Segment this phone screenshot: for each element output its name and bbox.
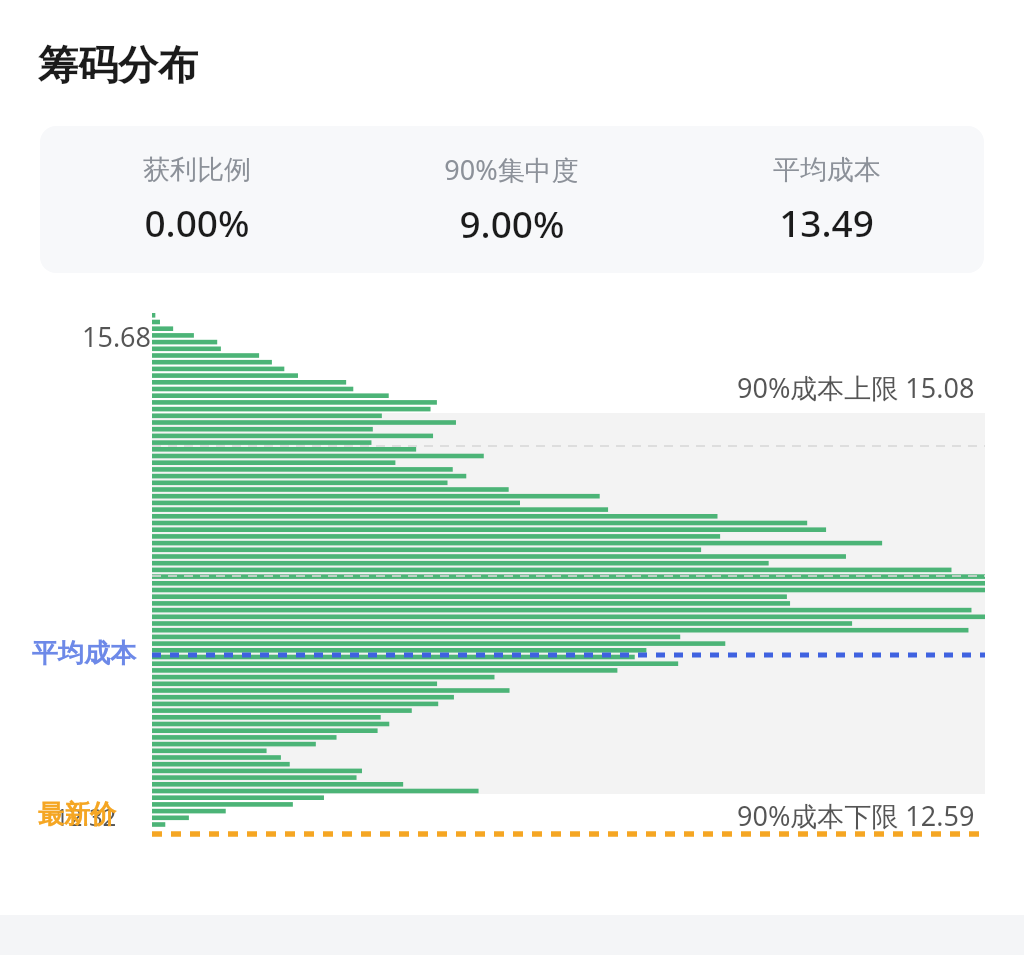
staticText: 筹码分布 xyxy=(38,40,198,90)
button[interactable]: 获利比例 xyxy=(40,153,354,247)
staticText: 90%集中度 xyxy=(444,151,579,188)
staticText: 15.68 xyxy=(82,318,152,355)
staticText: 平均成本 xyxy=(32,637,136,670)
staticText: 0.00% xyxy=(144,197,250,247)
staticText: 12.32 xyxy=(55,800,117,833)
staticText: 90%成本下限 12.59 xyxy=(737,797,975,834)
staticText: 13.49 xyxy=(779,197,874,247)
button[interactable]: 筹码分布图 xyxy=(0,293,1024,915)
staticText: 平均成本 xyxy=(773,153,881,187)
staticText: 获利比例 xyxy=(143,153,251,187)
staticText: 9.00% xyxy=(459,198,565,248)
button[interactable]: 90%集中度 xyxy=(354,151,669,248)
staticText: 90%成本上限 15.08 xyxy=(737,369,975,406)
button[interactable]: 平均成本 xyxy=(669,153,984,247)
staticText: 最新价 xyxy=(38,798,116,831)
button[interactable]: 获利比例 xyxy=(40,126,984,273)
